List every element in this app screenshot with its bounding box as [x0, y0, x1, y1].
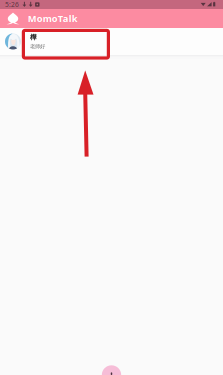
button[interactable]: 樺	[0, 28, 223, 55]
staticText: 老师好	[30, 43, 45, 50]
staticText: MomoTalk	[28, 12, 78, 25]
staticText: 樺	[30, 33, 37, 41]
staticText: 5:26	[5, 0, 19, 9]
